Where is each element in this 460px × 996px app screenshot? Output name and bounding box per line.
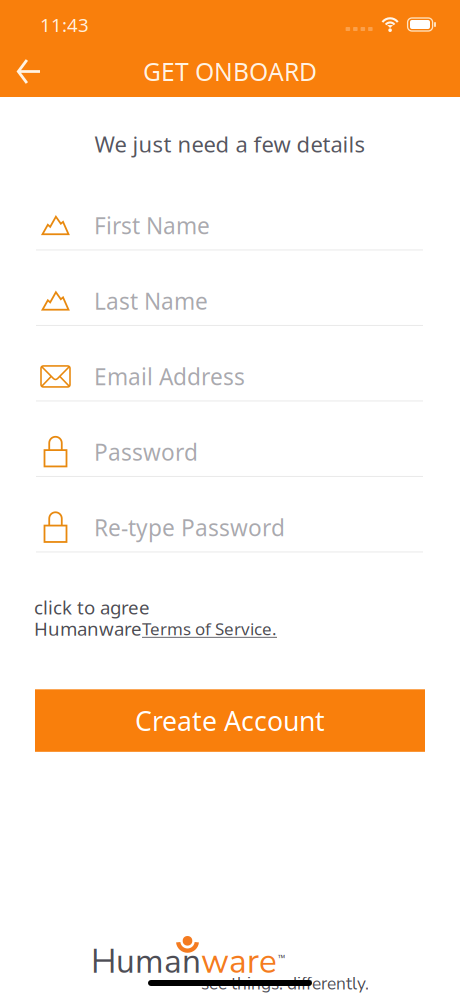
- button[interactable]: Back: [0, 47, 56, 96]
- staticText: We just need a few details: [94, 129, 365, 159]
- button[interactable]: Terms of Service.: [142, 617, 277, 640]
- button[interactable]: Password: [0, 401, 460, 477]
- button[interactable]: Re-type Password: [0, 477, 460, 552]
- button[interactable]: First Name: [0, 175, 460, 250]
- staticText: see things. differently.: [201, 972, 369, 996]
- staticText: Email Address: [94, 361, 245, 392]
- staticText: Last Name: [94, 285, 208, 316]
- staticText: Password: [94, 436, 198, 467]
- staticText: Re-type Password: [94, 512, 285, 543]
- staticText: Human: [91, 939, 201, 984]
- button[interactable]: Last Name: [0, 250, 460, 326]
- button[interactable]: Email Address: [0, 326, 460, 401]
- staticText: click to agree: [34, 594, 150, 620]
- staticText: Humanware: [34, 616, 142, 641]
- staticText: Terms of Service.: [142, 617, 277, 640]
- staticText: First Name: [94, 210, 210, 241]
- staticText: 11:43: [40, 12, 89, 37]
- staticText: Create Account: [135, 702, 325, 739]
- button[interactable]: Create Account: [35, 689, 425, 752]
- staticText: ware: [201, 939, 277, 984]
- staticText: ™: [278, 952, 285, 965]
- staticText: GET ONBOARD: [143, 55, 317, 88]
